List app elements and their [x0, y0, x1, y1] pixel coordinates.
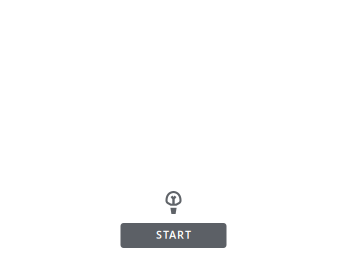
- button[interactable]: START: [120, 223, 226, 248]
- staticText: START: [156, 227, 191, 242]
